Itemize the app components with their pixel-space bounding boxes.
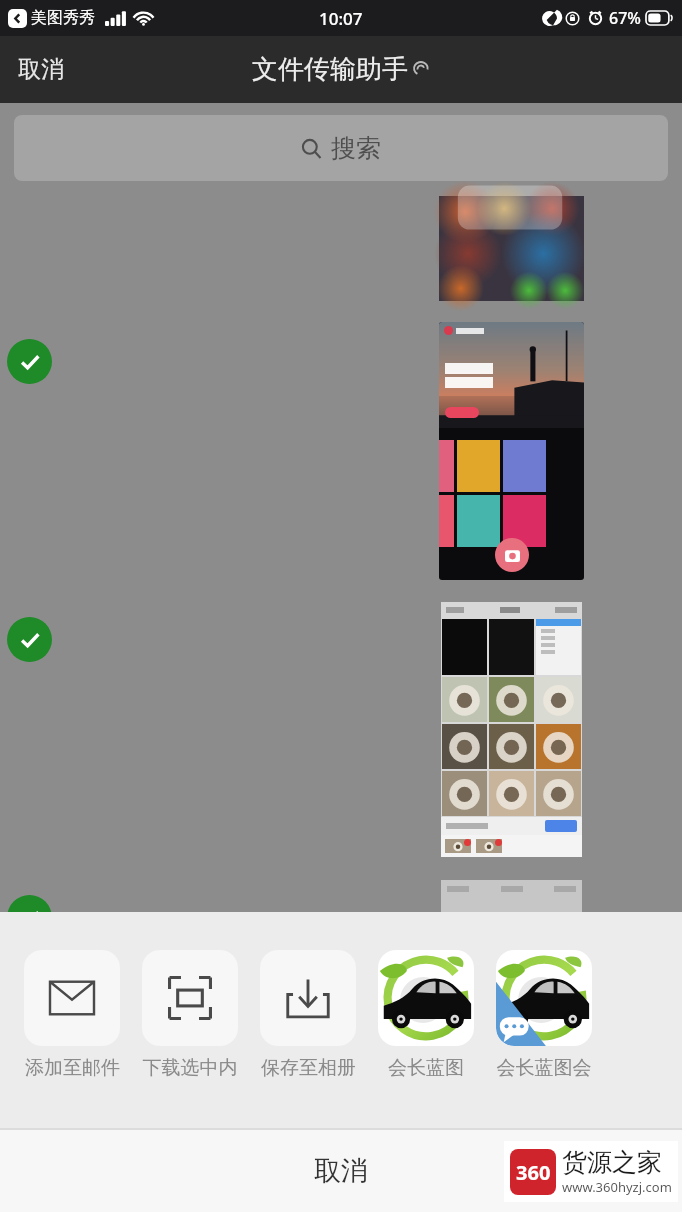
staticText: 会长蓝图会话	[496, 1056, 592, 1080]
button[interactable]: 搜索	[14, 115, 668, 181]
staticText: 搜索	[331, 133, 381, 164]
button[interactable]: Selected	[7, 895, 52, 940]
button[interactable]: 下载选中内容	[142, 950, 238, 1080]
staticText: 下载选中内容	[142, 1056, 238, 1080]
button[interactable]: 保存至相册	[260, 950, 356, 1080]
staticText: www.360hyzj.com	[562, 1178, 672, 1196]
staticText: 货源之家	[562, 1147, 662, 1178]
staticText: 取消	[314, 1154, 368, 1188]
staticText: 360	[516, 1159, 551, 1186]
button[interactable]: Selected	[7, 617, 52, 662]
staticText: 美图秀秀	[31, 8, 95, 28]
staticText: 10:07	[319, 7, 363, 30]
button[interactable]: 取消	[0, 1130, 682, 1212]
button[interactable]: 会长蓝图会话	[496, 950, 592, 1080]
staticText: 文件传输助手	[252, 53, 408, 86]
button[interactable]: Selected	[7, 339, 52, 384]
staticText: 取消	[18, 55, 64, 84]
button[interactable]: 添加至邮件	[24, 950, 120, 1080]
staticText: 添加至邮件	[25, 1056, 120, 1080]
button[interactable]: 取消	[0, 47, 82, 92]
staticText: 67%	[609, 7, 641, 29]
button[interactable]: 会长蓝图	[378, 950, 474, 1080]
staticText: 会长蓝图	[388, 1056, 464, 1080]
staticText: 保存至相册	[261, 1056, 356, 1080]
